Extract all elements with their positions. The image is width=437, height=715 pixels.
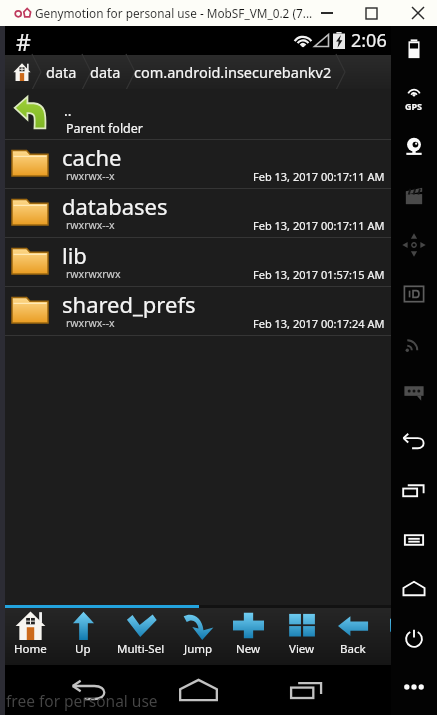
button[interactable]: com.android.insecurebankv2 [129, 55, 337, 89]
button[interactable]: New [222, 608, 274, 665]
staticText: cache [62, 142, 122, 172]
staticText: com.android.insecurebankv2 [134, 62, 332, 82]
button[interactable]: Home [391, 565, 437, 613]
staticText: Up [75, 641, 91, 657]
button[interactable]: data [85, 55, 126, 89]
button[interactable]: lib [5, 238, 391, 286]
button[interactable]: Home [167, 665, 229, 715]
button[interactable]: Home [4, 608, 56, 665]
staticText: GPS [405, 100, 423, 112]
button[interactable]: Battery [391, 25, 437, 73]
button[interactable]: Back [327, 608, 379, 665]
staticText: New [236, 641, 261, 657]
button[interactable]: shared_prefs [5, 287, 391, 335]
staticText: Multi-Sel [117, 641, 165, 657]
button[interactable]: .. [5, 89, 391, 139]
button[interactable]: Network [391, 319, 437, 367]
button[interactable]: Up [57, 608, 109, 665]
button[interactable]: Identifiers [391, 270, 437, 318]
staticText: data [46, 62, 77, 82]
staticText: Feb 13, 2017 00:17:24 AM [253, 316, 385, 331]
staticText: rwxrwx--x [66, 316, 115, 330]
staticText: .. [64, 101, 72, 120]
staticText: Jump [184, 641, 213, 657]
staticText: Genymotion for personal use - MobSF_VM_0… [35, 5, 313, 21]
button[interactable]: Multi-Sel [115, 608, 167, 665]
button[interactable]: Maximize [348, 0, 394, 26]
button[interactable]: View [276, 608, 328, 665]
staticText: shared_prefs [62, 289, 196, 319]
staticText: Feb 13, 2017 00:17:11 AM [253, 218, 385, 233]
button[interactable]: GPS [391, 74, 437, 122]
button[interactable]: Minimize [304, 0, 350, 26]
button[interactable]: cache [5, 140, 391, 188]
button[interactable]: data [41, 55, 82, 89]
button[interactable]: Screen recording [391, 172, 437, 220]
staticText: Feb 13, 2017 01:57:15 AM [253, 267, 385, 282]
button[interactable]: Jump [172, 608, 224, 665]
button[interactable]: Recent apps [391, 466, 437, 514]
button[interactable]: Phone / SMS [391, 368, 437, 416]
staticText: rwxrwxrwx [66, 267, 121, 281]
button[interactable]: databases [5, 189, 391, 237]
staticText: 2:06 [351, 28, 387, 53]
button[interactable]: Menu [391, 516, 437, 564]
staticText: rwxrwx--x [66, 218, 115, 232]
staticText: lib [62, 240, 87, 270]
staticText: data [90, 62, 121, 82]
button[interactable]: Close [397, 0, 437, 26]
staticText: Parent folder [66, 120, 144, 137]
button[interactable]: Home [9, 57, 35, 87]
button[interactable]: Camera [391, 123, 437, 171]
staticText: Home [14, 641, 47, 657]
button[interactable]: Recent apps [277, 665, 339, 715]
button[interactable]: Virtual sensors [391, 221, 437, 269]
staticText: rwxrwx--x [66, 169, 115, 183]
button[interactable]: More [391, 663, 437, 711]
button[interactable]: More tools [386, 608, 406, 665]
staticText: free for personal use [6, 690, 158, 711]
staticText: # [16, 26, 31, 55]
button[interactable]: Back [391, 417, 437, 465]
button[interactable]: Power [391, 614, 437, 662]
staticText: Back [340, 641, 366, 657]
staticText: View [289, 641, 315, 657]
staticText: Feb 13, 2017 00:17:11 AM [253, 169, 385, 184]
button[interactable]: Back [59, 665, 121, 715]
staticText: databases [62, 191, 168, 221]
